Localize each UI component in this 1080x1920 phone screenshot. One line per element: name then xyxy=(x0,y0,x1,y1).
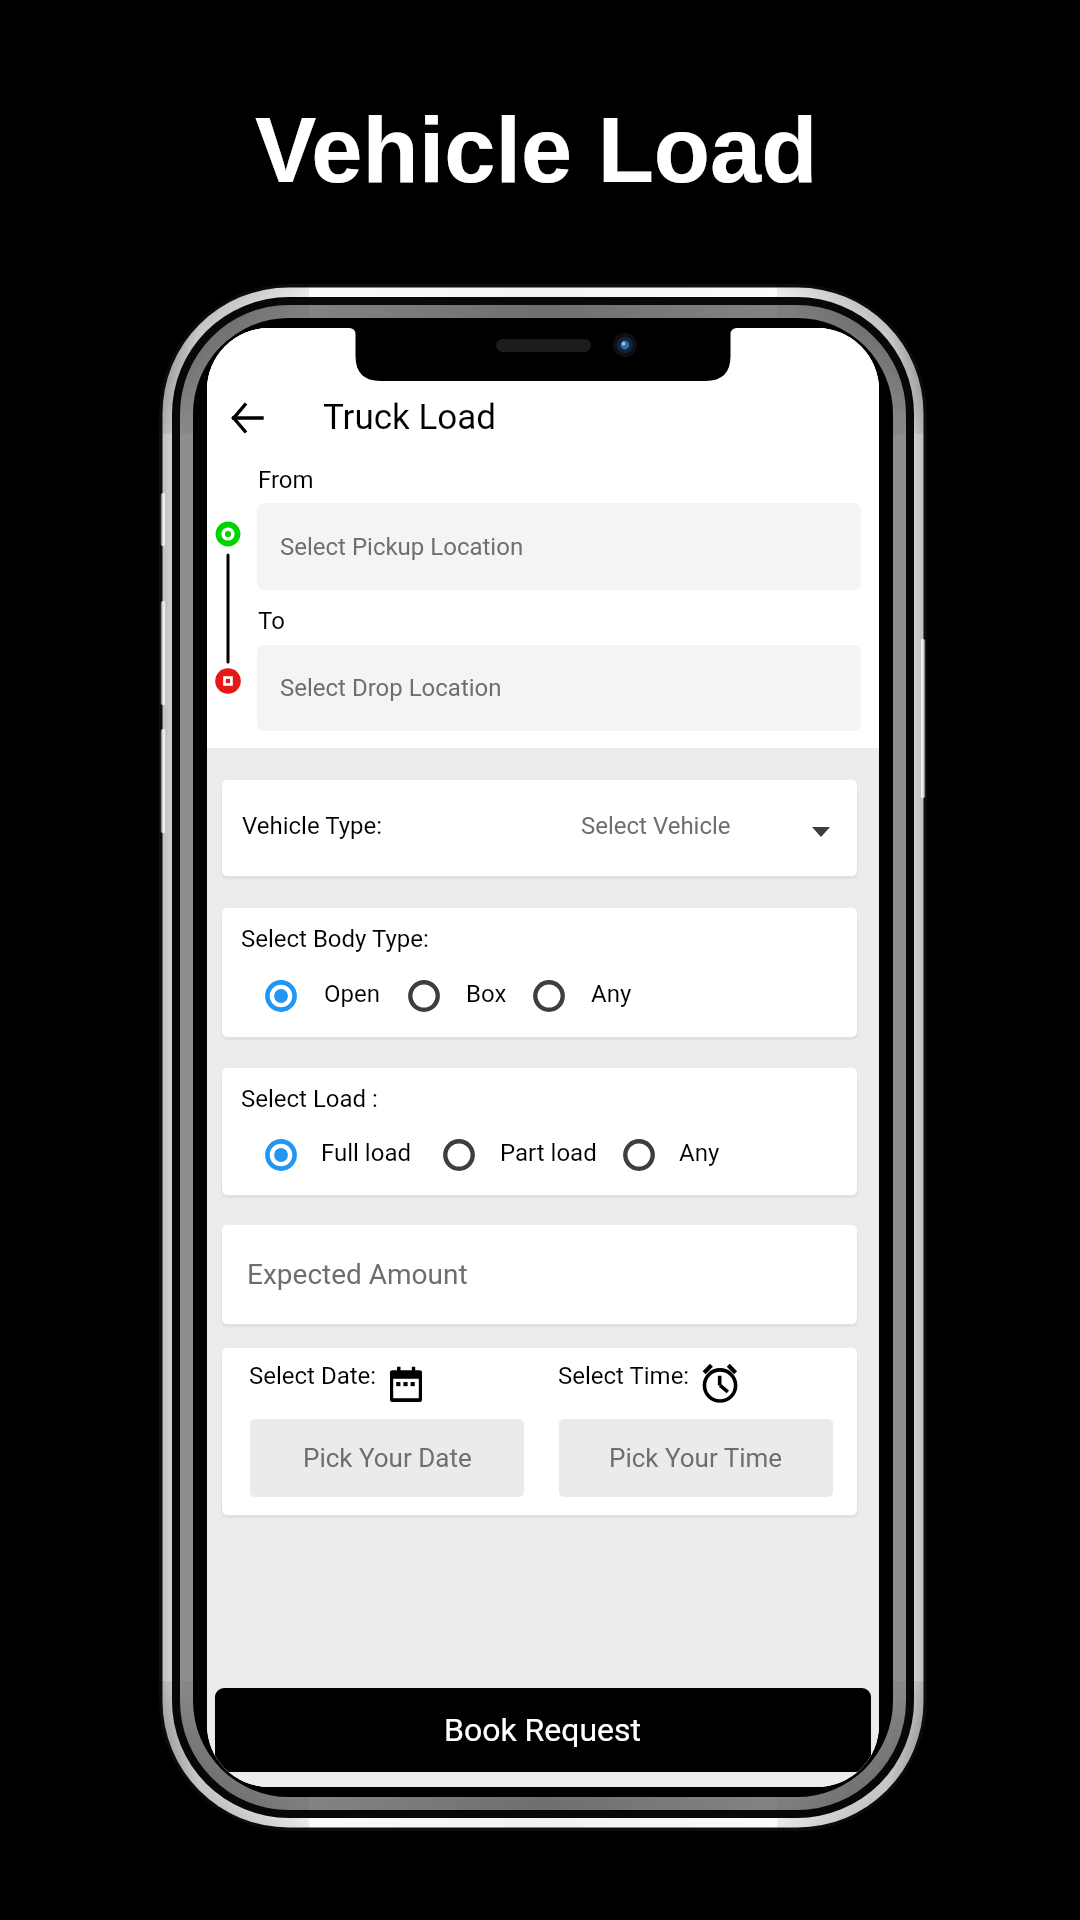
other: Clock xyxy=(702,1360,737,1401)
button[interactable]: Select Load : xyxy=(222,1068,857,1195)
button[interactable]: Pick Your Date xyxy=(250,1419,524,1497)
button[interactable] xyxy=(437,1133,481,1177)
staticText: Select Time: xyxy=(558,1362,690,1390)
button[interactable]: Part load xyxy=(500,1139,597,1167)
staticText: To xyxy=(258,607,285,635)
button[interactable] xyxy=(259,974,303,1018)
button[interactable]: Pick Your Time xyxy=(559,1419,833,1497)
button[interactable]: Expected Amount xyxy=(222,1225,857,1324)
button[interactable]: Any xyxy=(679,1139,720,1167)
button[interactable]: Back xyxy=(215,386,279,450)
button[interactable]: Any xyxy=(591,980,632,1008)
staticText: Pick Your Time xyxy=(609,1443,783,1473)
staticText: Truck Load xyxy=(323,397,497,438)
other: Calendar xyxy=(390,1366,422,1402)
staticText: Expected Amount xyxy=(247,1258,468,1291)
button[interactable]: Select Drop Location xyxy=(257,645,861,731)
staticText: Select Load : xyxy=(241,1085,378,1113)
button[interactable] xyxy=(402,974,446,1018)
button[interactable]: Vehicle Type: xyxy=(222,780,857,876)
button[interactable] xyxy=(259,1133,303,1177)
button[interactable]: Box xyxy=(466,980,507,1008)
button[interactable]: Select Pickup Location xyxy=(257,503,861,590)
staticText: Select Date: xyxy=(249,1362,377,1390)
button[interactable]: Book Request xyxy=(215,1688,871,1772)
staticText: Select Drop Location xyxy=(280,674,502,702)
staticText: Select Pickup Location xyxy=(280,533,524,561)
button[interactable]: Full load xyxy=(321,1139,411,1167)
staticText: Vehicle Load xyxy=(255,99,818,202)
staticText: Select Body Type: xyxy=(241,925,429,953)
button[interactable] xyxy=(527,974,571,1018)
button[interactable] xyxy=(617,1133,661,1177)
button[interactable]: Select Body Type: xyxy=(222,908,857,1037)
staticText: Vehicle Type: xyxy=(242,812,383,840)
button[interactable]: Open xyxy=(324,980,380,1008)
staticText: From xyxy=(258,466,314,494)
staticText: Select Vehicle xyxy=(581,812,731,840)
button[interactable]: Select Date: xyxy=(222,1348,857,1515)
staticText: Pick Your Date xyxy=(303,1443,472,1473)
staticText: Book Request xyxy=(444,1711,642,1749)
button[interactable]: Select vehicle xyxy=(801,812,841,852)
